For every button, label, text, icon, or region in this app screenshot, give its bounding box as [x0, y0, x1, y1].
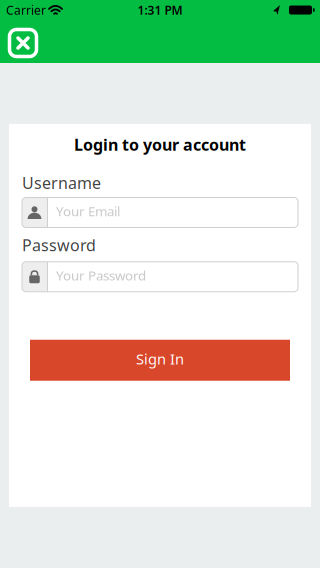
button[interactable]: Close: [8, 28, 38, 58]
staticText: 1:31 PM: [137, 2, 182, 18]
staticText: Your Email: [56, 202, 120, 220]
staticText: Sign In: [136, 349, 184, 368]
staticText: Your Password: [56, 266, 146, 284]
staticText: Username: [22, 172, 101, 193]
staticText: Carrier: [6, 2, 46, 18]
button[interactable]: Sign In: [30, 340, 290, 381]
staticText: Password: [22, 234, 96, 256]
staticText: Login to your account: [74, 134, 246, 155]
